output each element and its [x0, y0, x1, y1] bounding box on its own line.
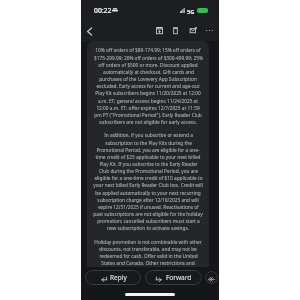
staticText: Club during the Promotional Period, you … — [99, 168, 198, 175]
staticText: 10% off orders of $80-174.99; 15% off or… — [95, 47, 201, 54]
staticText: subscribers are not eligible for early a… — [99, 119, 197, 126]
button[interactable]: Archive — [152, 23, 167, 38]
button[interactable]: Mark unread — [186, 23, 201, 38]
staticText: 00:22 — [94, 6, 112, 15]
staticText: Forward — [166, 273, 192, 282]
staticText: past subscriptions are not eligible for … — [93, 211, 203, 218]
staticText: new subscription to activate savings. — [107, 225, 189, 232]
staticText: pm PT ("Promotional Period"). Early Read… — [94, 112, 202, 119]
staticText: Reply — [110, 273, 127, 282]
staticText: discounts, not transferable, and may not… — [99, 246, 197, 253]
staticText: time credit of $25 applicable to your ne… — [95, 154, 201, 161]
staticText: redeemed for cash. Offer valid in the Un… — [99, 253, 198, 260]
staticText: be applied automatically to your next re… — [95, 190, 201, 197]
staticText: expire 12/31/2025 if unused. Reactivatio… — [98, 204, 199, 211]
staticText: promotion; cancelled subscribers must st… — [97, 218, 200, 225]
button[interactable]: More options — [202, 23, 217, 38]
button[interactable]: Back — [82, 24, 97, 39]
staticText: In addition, if you subscribe or extend … — [104, 132, 193, 139]
staticText: excluded. Early access for current and a… — [96, 83, 200, 90]
staticText: purchases of the Lovevery App Subscripti… — [99, 76, 197, 83]
staticText: States and Canada. Other restrictions an… — [101, 260, 195, 267]
staticText: subscription charge after 12/10/2025 and… — [97, 197, 199, 204]
staticText: a.m. ET; general access begins 11/24/202… — [98, 98, 198, 105]
staticText: Play Kit subscribers begins 11/20/2025 a… — [95, 90, 201, 97]
staticText: automatically at checkout. Gift cards an… — [103, 69, 194, 76]
button[interactable]: Delete — [168, 23, 183, 38]
staticText: Holiday promotion is not combinable with… — [94, 239, 202, 246]
staticText: Play Kit. If you subscribe to the Early … — [99, 161, 198, 168]
staticText: your next billed Early Reader Club box. … — [93, 182, 203, 189]
button[interactable]: Forward — [145, 270, 202, 285]
staticText: subscription to the Play Kits during the — [105, 140, 192, 147]
button[interactable]: Reply all — [205, 271, 218, 284]
staticText: 12:00 a.m. ET; offer expires 12/7/2025 a… — [96, 105, 200, 112]
staticText: 5G — [187, 8, 195, 16]
button[interactable]: Reply — [85, 270, 141, 285]
staticText: eligible for a one-time credit of $10 ap… — [94, 175, 203, 182]
staticText: Promotional Period, you are eligible for… — [96, 147, 200, 154]
staticText: off orders of $500 or more. Discount app… — [98, 62, 198, 69]
staticText: $175-299.99; 20% off orders of $300-499.… — [94, 55, 203, 62]
